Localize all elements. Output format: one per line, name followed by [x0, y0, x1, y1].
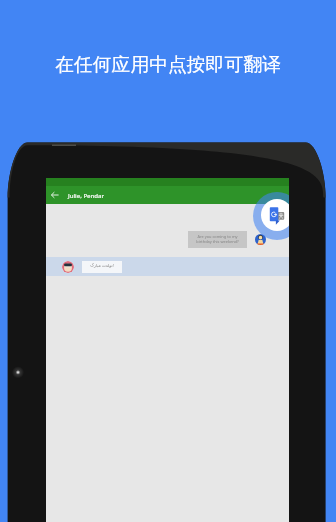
button[interactable]: تولدت مبارک!	[46, 257, 289, 276]
button[interactable]: Back	[46, 178, 289, 204]
staticText: تولدت مبارک!	[82, 263, 122, 269]
staticText: Julie, Pendar	[68, 192, 104, 200]
button[interactable]: Back	[49, 189, 61, 201]
staticText: Are you coming to my birthday this weeke…	[188, 234, 247, 244]
staticText: 在任何应用中点按即可翻译	[0, 53, 336, 77]
button[interactable]: Are you coming to my birthday this weeke…	[188, 231, 247, 248]
button[interactable]: Tap to translate	[261, 199, 289, 231]
